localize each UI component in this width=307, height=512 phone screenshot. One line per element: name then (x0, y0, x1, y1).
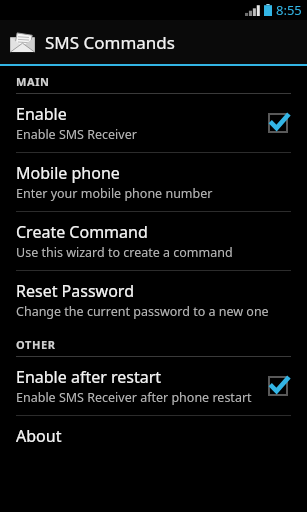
button[interactable]: Mobile phone (0, 153, 307, 211)
staticText: Create Command (16, 221, 148, 243)
button[interactable]: Toggle checkbox (263, 371, 293, 401)
staticText: Reset Password (16, 280, 134, 302)
staticText: MAIN (16, 74, 50, 89)
staticText: Change the current password to a new one (16, 303, 269, 320)
staticText: 8:55 (276, 1, 302, 19)
staticText: OTHER (16, 337, 56, 352)
button[interactable]: Reset Password (0, 271, 307, 329)
staticText: Enable after restart (16, 366, 162, 388)
button[interactable]: About (0, 416, 307, 456)
button[interactable]: Enable after restart (0, 357, 307, 415)
staticText: About (16, 425, 62, 447)
staticText: SMS Commands (45, 31, 175, 54)
button[interactable]: Toggle checkbox (263, 108, 293, 138)
staticText: Mobile phone (16, 162, 120, 184)
staticText: Enter your mobile phone number (16, 185, 213, 202)
button[interactable]: Enable (0, 94, 307, 152)
button[interactable]: Create Command (0, 212, 307, 270)
staticText: Use this wizard to create a command (16, 244, 233, 261)
staticText: Enable SMS Receiver after phone restart (16, 389, 252, 406)
staticText: Enable (16, 103, 67, 125)
staticText: Enable SMS Receiver (16, 126, 137, 143)
